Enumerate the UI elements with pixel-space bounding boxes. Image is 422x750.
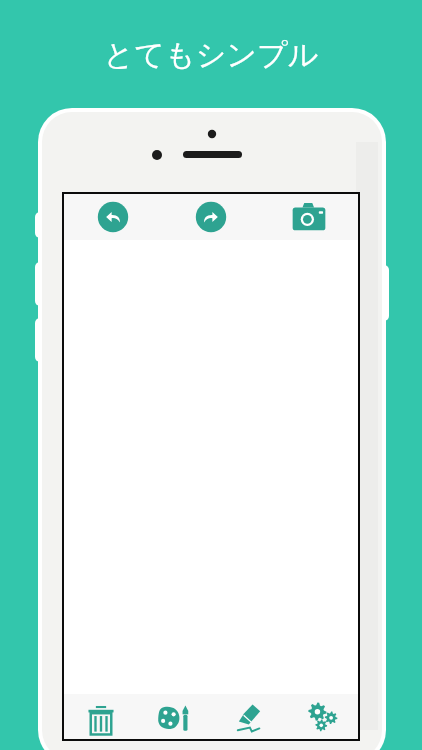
staticText: とてもシンプル [0,36,422,750]
button[interactable]: Settings [285,695,358,739]
button[interactable]: Delete [64,695,137,739]
button[interactable]: Camera [260,195,358,239]
button[interactable]: Colors [137,695,211,739]
button[interactable]: Marker [211,695,285,739]
button[interactable]: Undo [64,195,162,239]
button[interactable]: Redo [162,195,260,239]
